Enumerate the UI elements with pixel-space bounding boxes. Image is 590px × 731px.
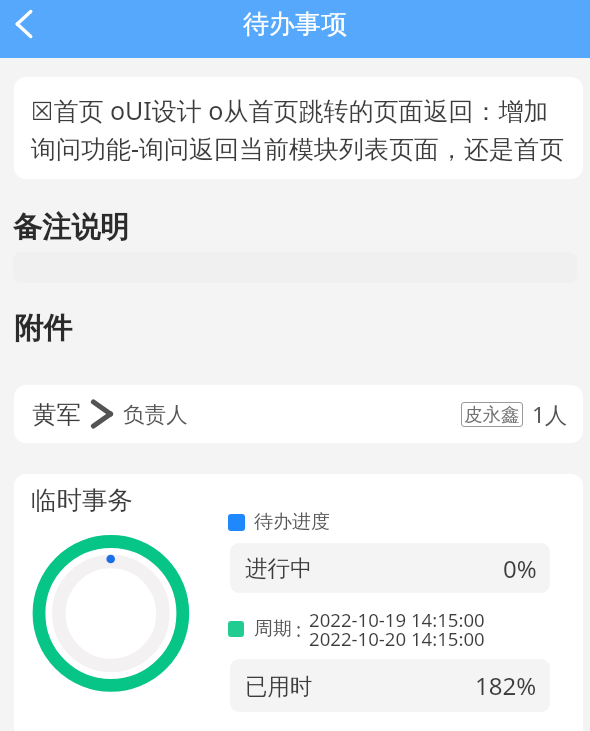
staticText: :	[296, 617, 302, 643]
staticText: 黄军	[32, 399, 81, 430]
staticText: ☒首页 oUI设计 o从首页跳转的页面返回：增加询问功能-询问返回当前模块列表页…	[31, 93, 566, 165]
staticText: 临时事务	[31, 484, 133, 516]
staticText: 1人	[532, 399, 568, 430]
other: Select owner	[81, 399, 123, 429]
staticText: 待办进度	[254, 510, 330, 534]
staticText: 0%	[503, 552, 537, 585]
button[interactable]: 临时事务	[14, 474, 583, 731]
staticText: 周期	[254, 617, 292, 641]
staticText: 进行中	[245, 554, 313, 582]
staticText: 附件	[14, 310, 72, 347]
staticText: 2022-10-19 14:15:00 2022-10-20 14:15:00	[309, 607, 485, 652]
button[interactable]: ☒首页 oUI设计 o从首页跳转的页面返回：增加询问功能-询问返回当前模块列表页…	[14, 77, 583, 179]
staticText: 备注说明	[13, 209, 129, 246]
button[interactable]: Back	[0, 0, 48, 48]
staticText: 负责人	[123, 401, 188, 428]
staticText: 皮永鑫	[464, 403, 520, 426]
button[interactable]: 进行中	[230, 543, 550, 593]
button[interactable]: 黄军	[14, 385, 583, 443]
staticText: 182%	[475, 669, 537, 702]
staticText: 已用时	[245, 672, 313, 700]
staticText: 待办事项	[243, 8, 347, 41]
button[interactable]: 已用时	[230, 659, 550, 712]
